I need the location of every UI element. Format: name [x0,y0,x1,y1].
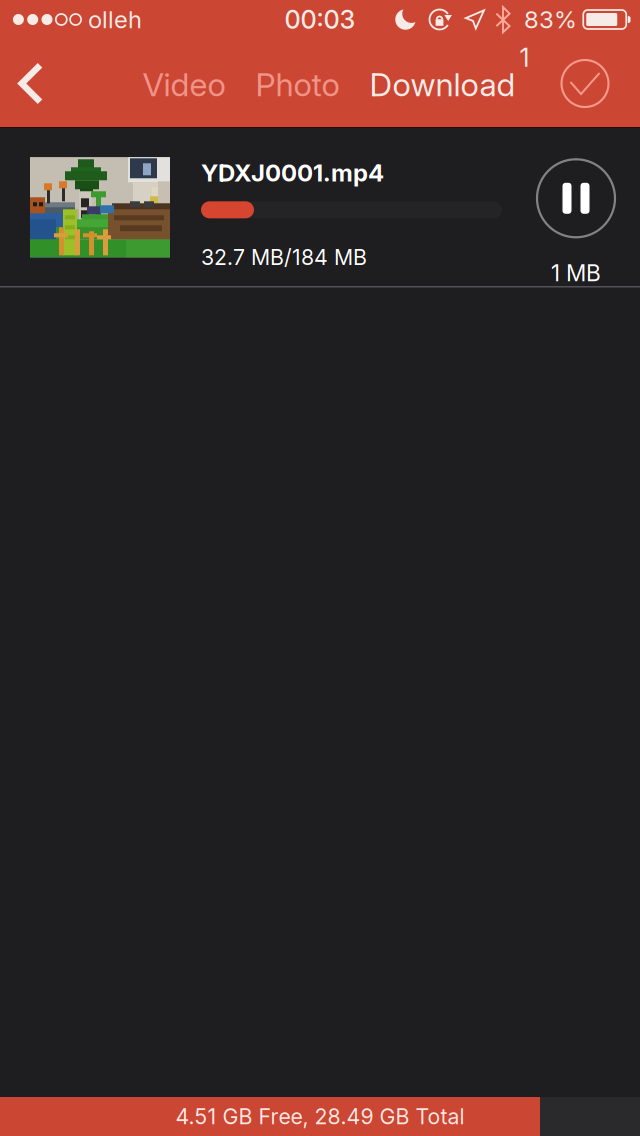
staticText: 4.51 GB Free, 28.49 GB Total [175,1104,464,1129]
staticText: Video [142,65,225,104]
button[interactable]: Video [127,56,240,112]
button[interactable]: Storage info [0,1097,540,1136]
staticText: 1 MB [551,259,601,287]
staticText: olleh [88,5,142,34]
staticText: Photo [255,65,339,104]
button[interactable]: Pause download [537,127,615,237]
staticText: YDXJ0001.mp4 [201,158,384,187]
staticText: 1 [519,42,529,73]
button[interactable]: Photo [240,56,354,112]
staticText: 00:03 [284,4,355,35]
button[interactable]: Select all [552,51,618,115]
button[interactable]: Download [354,56,538,112]
staticText: 32.7 MB/184 MB [201,244,367,270]
staticText: Download [369,65,515,104]
staticText: 83% [524,5,577,34]
button[interactable]: Back [0,51,62,115]
